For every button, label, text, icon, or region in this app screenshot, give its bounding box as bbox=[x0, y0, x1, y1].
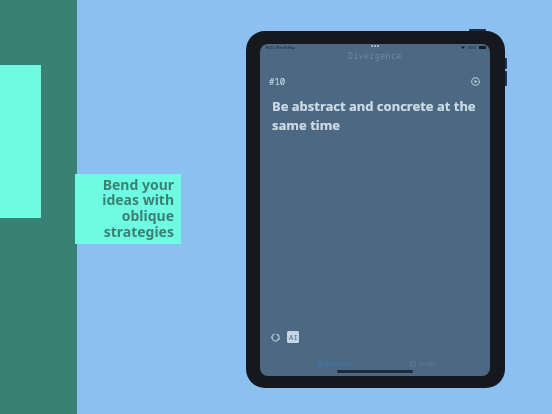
staticText: Bend your ideas with oblique strategies bbox=[81, 175, 174, 240]
button[interactable]: Bookmark bbox=[315, 358, 354, 369]
button[interactable]: AI bbox=[286, 330, 300, 344]
staticText: #10 bbox=[269, 75, 286, 87]
button[interactable]: Play bbox=[468, 74, 482, 88]
staticText: Shuffle bbox=[418, 360, 436, 367]
button[interactable]: Refresh bbox=[268, 330, 282, 344]
staticText: Bookmark bbox=[325, 360, 352, 367]
button[interactable]: Bend your ideas with oblique strategies bbox=[75, 174, 181, 244]
staticText: Divergence bbox=[348, 50, 402, 61]
staticText: 100% bbox=[467, 45, 477, 50]
staticText: 18:33 Wed 8 May bbox=[265, 45, 295, 50]
button[interactable]: Shuffle bbox=[408, 358, 438, 369]
staticText: Be abstract and concrete at the same tim… bbox=[272, 97, 479, 133]
staticText: AI bbox=[289, 332, 298, 342]
